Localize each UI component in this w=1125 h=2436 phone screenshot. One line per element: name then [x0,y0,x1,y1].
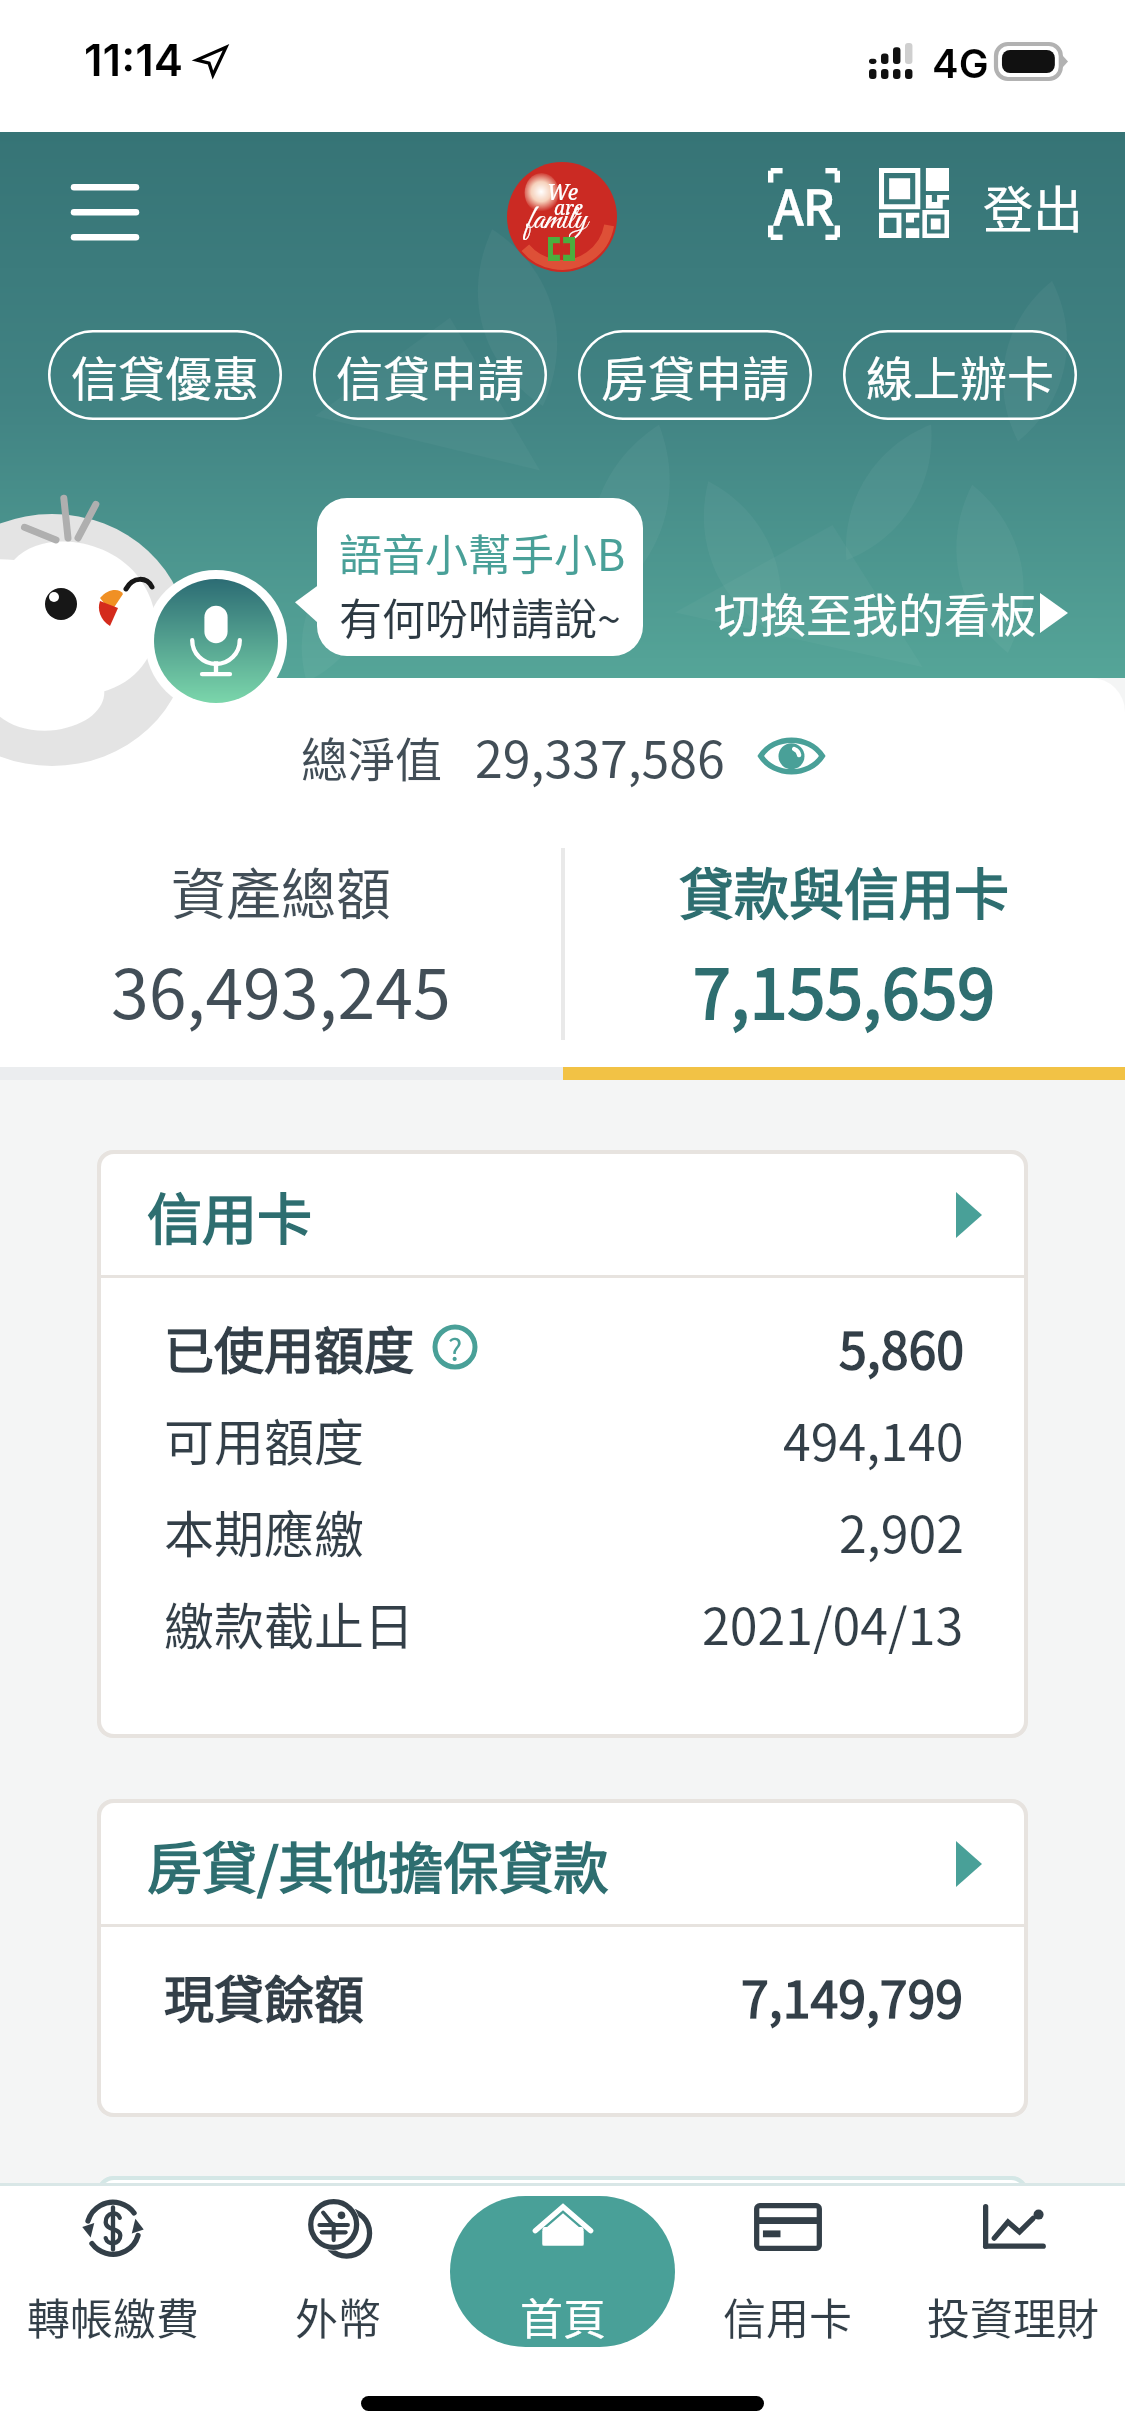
staticText: are [554,195,583,221]
button[interactable]: 房貸/其他擔保貸款 [101,1803,1024,1924]
button[interactable]: 首頁 [450,2196,675,2347]
staticText: 2021/04/13 [702,1587,964,1659]
staticText: 繳款截止日 [164,1587,414,1659]
staticText: 信貸優惠 [71,341,259,409]
staticText: 外幣 [295,2285,381,2347]
button[interactable]: Menu [62,170,148,254]
staticText: 可用額度 [164,1403,364,1475]
button[interactable]: 投資理財 [900,2196,1125,2347]
staticText: 2,902 [839,1495,964,1567]
staticText: 房貸/其他擔保貸款 [147,1824,609,1904]
staticText: 5,860 [839,1311,964,1383]
staticText: 7,155,659 [693,940,995,1038]
staticText: 本期應繳 [164,1495,364,1567]
staticText: AR [774,169,834,239]
button[interactable]: 信貸優惠 [48,330,282,420]
staticText: 11:14 [84,33,184,86]
button[interactable]: 外幣 [225,2196,450,2347]
button[interactable]: 信用卡 [675,2196,900,2347]
button[interactable]: AR viewer [756,156,852,252]
staticText: 投資理財 [927,2285,1099,2347]
staticText: 轉帳繳費 [27,2285,199,2347]
staticText: 信貸申請 [336,341,524,409]
button[interactable] [101,2180,1024,2292]
staticText: 房貸申請 [601,341,789,409]
staticText: 貸款與信用卡 [679,850,1010,930]
staticText: 4G [932,39,989,87]
staticText: 語音小幫手小B [339,521,626,583]
staticText: 信用卡 [147,1175,313,1255]
staticText: ? [448,1326,463,1369]
button[interactable]: Scan QR code [867,156,961,250]
staticText: 已使用額度 [164,1311,414,1383]
staticText: 資產總額 [171,850,392,930]
staticText: 29,337,586 [475,720,725,792]
staticText: We [547,178,579,207]
staticText: 首頁 [520,2285,606,2347]
button[interactable]: 信用卡 [101,1154,1024,1275]
staticText: 現貸餘額 [164,1960,364,2032]
staticText: 信用卡 [723,2285,852,2347]
button[interactable]: Voice assistant [154,579,278,703]
button[interactable]: 信貸申請 [313,330,547,420]
staticText: 登出 [983,170,1083,242]
staticText: 切換至我的看板 [714,579,1036,646]
button[interactable]: Toggle balance visibility [758,734,825,778]
staticText: 線上辦卡 [866,341,1054,409]
staticText: 494,140 [783,1403,964,1475]
button[interactable]: 轉帳繳費 [0,2196,225,2347]
button[interactable]: 房貸申請 [578,330,812,420]
button[interactable]: 線上辦卡 [843,330,1077,420]
button[interactable]: 登出 [983,170,1083,242]
staticText: 36,493,245 [111,940,451,1038]
button[interactable]: 語音小幫手小B [317,498,643,656]
button[interactable]: 切換至我的看板 [714,579,1068,646]
staticText: 有何吩咐請說~ [339,585,621,647]
staticText: family [527,200,588,241]
button[interactable]: Help [432,1324,478,1370]
staticText: 總淨值 [301,722,442,790]
staticText: 7,149,799 [741,1960,964,2032]
